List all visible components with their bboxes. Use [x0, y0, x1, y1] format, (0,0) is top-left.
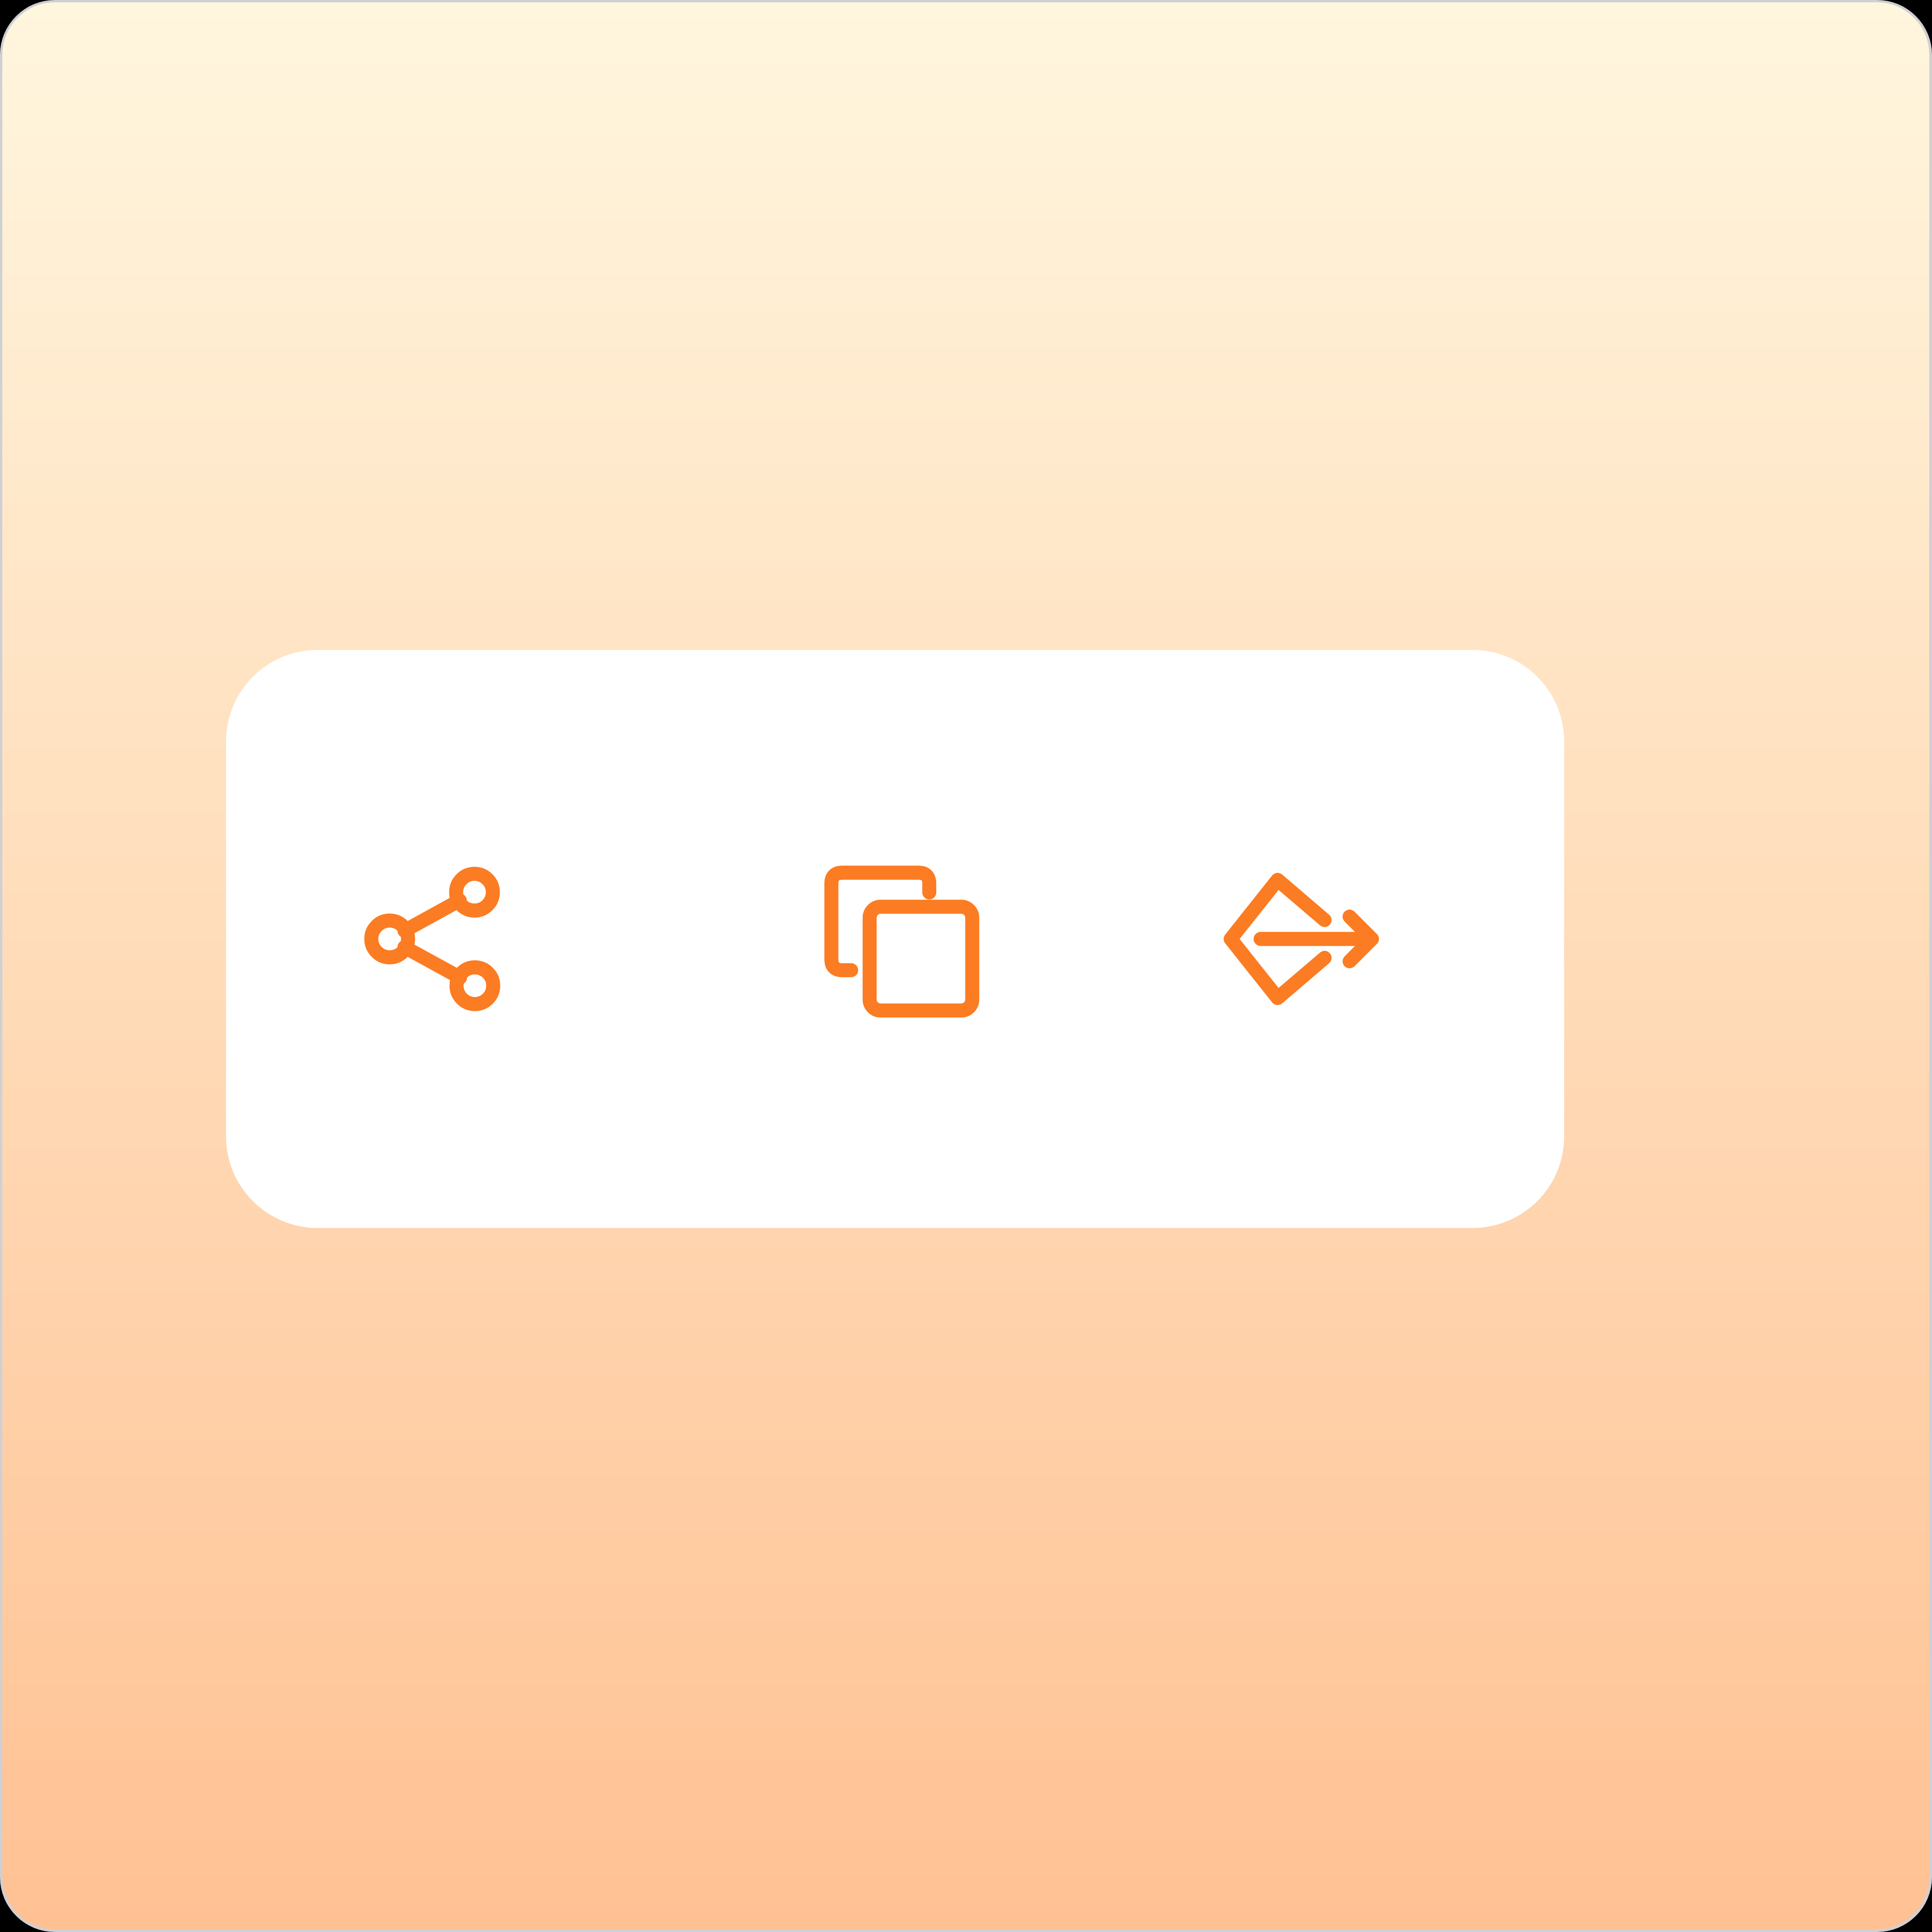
- button[interactable]: Share: [342, 844, 531, 1034]
- button[interactable]: Export: [1192, 844, 1381, 1034]
- button[interactable]: Copy: [805, 844, 995, 1034]
